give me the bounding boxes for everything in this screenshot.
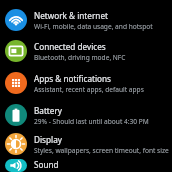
staticText: Connected devices [34,41,106,52]
button[interactable]: Apps & notifications [0,70,172,96]
staticText: Assistant, recent apps, default apps [34,85,144,94]
staticText: Network & internet [34,10,108,21]
button[interactable]: Connected devices [0,38,172,64]
button[interactable]: Sound [0,159,172,172]
button[interactable]: Battery [0,102,172,128]
staticText: Apps & notifications [34,73,112,84]
button[interactable]: Network & internet [0,7,172,33]
staticText: Battery [34,105,63,116]
staticText: Sound [34,159,59,170]
staticText: Styles, wallpapers, screen timeout, font… [34,146,169,155]
staticText: 29% - Should last until about 4:30 PM [34,117,149,126]
staticText: Wi-Fi, mobile, data usage, and hotspot [34,22,153,31]
button[interactable]: Display [0,131,172,157]
staticText: Bluetooth, driving mode, NFC [34,53,126,62]
staticText: Display [34,134,62,145]
